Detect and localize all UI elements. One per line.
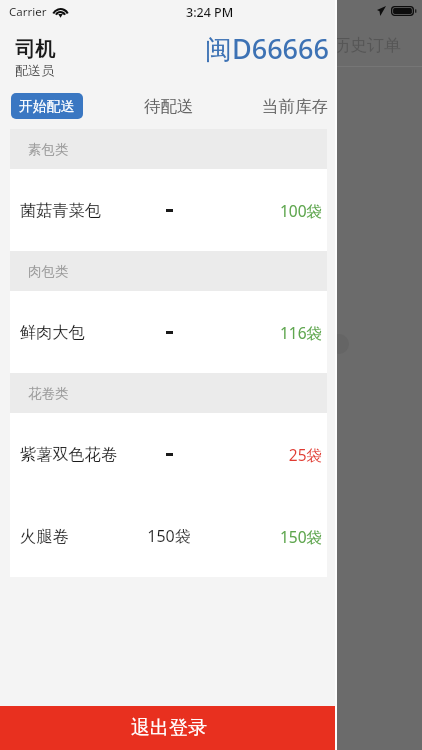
staticText: 配送员 <box>15 62 54 78</box>
staticText: Carrier <box>9 4 47 20</box>
staticText: 菌菇青菜包 <box>20 200 101 220</box>
button[interactable]: 退出登录 <box>0 706 337 750</box>
staticText: 素包类 <box>28 141 69 158</box>
button[interactable]: 菌菇青菜包 <box>10 169 327 251</box>
staticText: 历史订单 <box>333 35 401 56</box>
staticText: 150袋 <box>279 526 322 547</box>
staticText: 150袋 <box>129 525 209 547</box>
staticText: 退出登录 <box>131 716 207 740</box>
staticText: 25袋 <box>288 444 322 465</box>
staticText: 鲜肉大包 <box>20 322 85 342</box>
staticText: 116袋 <box>279 322 322 343</box>
button[interactable]: 鲜肉大包 <box>10 291 327 373</box>
staticText: 闽D66666 <box>205 30 329 67</box>
button[interactable]: 火腿卷 <box>10 495 327 577</box>
staticText: 当前库存 <box>262 96 328 117</box>
staticText: 100袋 <box>279 200 322 221</box>
staticText: 待配送 <box>144 96 194 117</box>
button[interactable]: 待配送 <box>132 91 205 121</box>
staticText: 开始配送 <box>19 98 75 115</box>
staticText: 肉包类 <box>28 263 69 280</box>
staticText: 火腿卷 <box>20 526 69 546</box>
other: Battery <box>391 6 416 16</box>
other: Location <box>377 6 386 16</box>
button[interactable]: 紫薯双色花卷 <box>10 413 327 495</box>
staticText: 花卷类 <box>28 385 69 402</box>
staticText: 紫薯双色花卷 <box>20 444 118 464</box>
button[interactable]: 开始配送 <box>11 93 83 119</box>
staticText: 3:24 PM <box>186 4 234 21</box>
staticText: 司机 <box>15 37 55 62</box>
button[interactable]: 当前库存 <box>256 91 333 121</box>
